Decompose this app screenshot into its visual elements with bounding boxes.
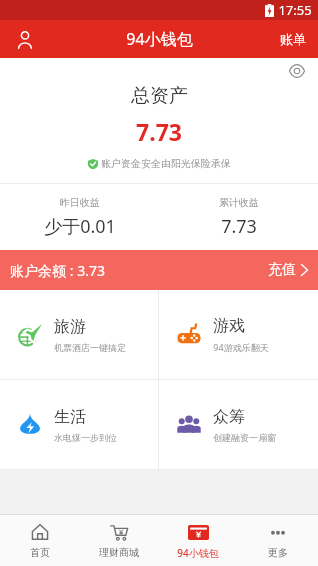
button[interactable]: 游戏: [159, 290, 318, 379]
staticText: 7.73: [136, 116, 182, 147]
button[interactable]: 首页: [0, 515, 79, 566]
staticText: 94游戏乐翻天: [213, 341, 269, 353]
staticText: 账户余额 : 3.73: [10, 261, 105, 280]
button[interactable]: Toggle visibility: [284, 58, 310, 84]
staticText: 生活: [54, 407, 86, 427]
staticText: 众筹: [213, 407, 245, 427]
staticText: 总资产: [131, 84, 188, 108]
button[interactable]: 94小钱包: [158, 515, 238, 566]
button[interactable]: 昨日收益: [0, 184, 159, 250]
staticText: 旅游: [54, 317, 86, 337]
staticText: 游戏: [213, 316, 245, 336]
staticText: 水电煤一步到位: [54, 432, 117, 443]
staticText: 17:55: [278, 1, 312, 19]
staticText: 首页: [30, 546, 50, 559]
staticText: 账单: [280, 31, 306, 47]
staticText: 7.73: [221, 214, 257, 239]
button[interactable]: Profile: [8, 22, 42, 56]
staticText: 昨日收益: [60, 196, 100, 209]
button[interactable]: 更多: [238, 515, 318, 566]
staticText: 充值: [268, 261, 296, 279]
button[interactable]: 理财商城: [79, 515, 158, 566]
button[interactable]: 生活: [0, 380, 158, 469]
staticText: 94小钱包: [177, 546, 219, 560]
button[interactable]: 众筹: [159, 380, 318, 469]
button[interactable]: 账户余额 : 3.73: [0, 250, 318, 290]
button[interactable]: 累计收益: [159, 184, 318, 250]
button[interactable]: 旅游: [0, 290, 158, 379]
staticText: 累计收益: [219, 196, 259, 209]
staticText: 账户资金安全由阳光保险承保: [101, 157, 231, 170]
staticText: 理财商城: [99, 546, 139, 559]
staticText: 少于0.01: [44, 214, 116, 239]
staticText: 创建融资一扇窗: [213, 432, 276, 443]
staticText: 94小钱包: [126, 28, 193, 50]
staticText: 更多: [268, 546, 288, 559]
button[interactable]: 账单: [268, 20, 318, 58]
staticText: 机票酒店一键搞定: [54, 342, 126, 353]
